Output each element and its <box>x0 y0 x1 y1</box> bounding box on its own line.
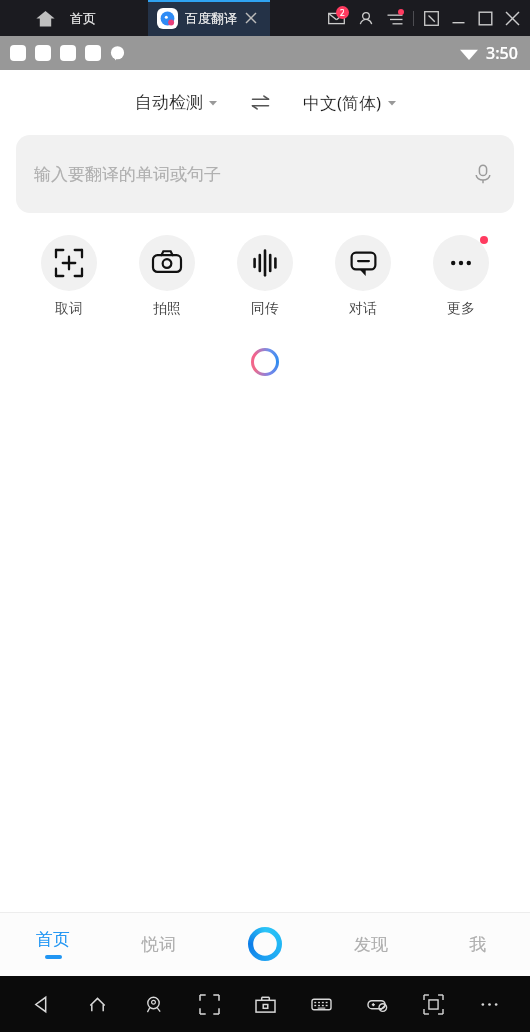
staticText: 百度翻译 <box>185 10 237 26</box>
staticText: 悦词 <box>142 934 176 955</box>
button[interactable]: Close <box>505 11 520 26</box>
staticText: 发现 <box>354 934 388 955</box>
button[interactable]: 百度翻译 <box>148 0 270 36</box>
button[interactable]: Menu <box>387 11 403 27</box>
staticText: 中文(简体) <box>303 91 382 114</box>
button[interactable]: Close tab <box>244 11 258 25</box>
staticText: 输入要翻译的单词或句子 <box>34 164 221 185</box>
button[interactable]: 悦词 <box>106 912 212 976</box>
button[interactable]: Home <box>80 987 114 1021</box>
staticText: 更多 <box>447 300 475 318</box>
button[interactable]: 发现 <box>318 912 424 976</box>
button[interactable]: Boost <box>136 987 170 1021</box>
button[interactable]: Translate <box>212 912 318 976</box>
button[interactable]: Swap languages <box>245 87 275 117</box>
button[interactable]: 对话 <box>314 233 412 320</box>
button[interactable]: 首页 <box>0 912 106 976</box>
button[interactable]: 中文(简体) <box>297 87 402 118</box>
button[interactable]: Account <box>358 11 374 27</box>
button[interactable]: 更多 <box>412 233 510 320</box>
button[interactable]: 自动检测 <box>129 88 223 117</box>
staticText: 同传 <box>251 300 279 318</box>
button[interactable]: More <box>472 987 506 1021</box>
staticText: 对话 <box>349 300 377 318</box>
button[interactable]: Gamepad off <box>360 987 394 1021</box>
button[interactable]: Scan <box>192 987 226 1021</box>
button[interactable]: 拍照 <box>118 233 216 320</box>
button[interactable]: Screenshot <box>416 987 450 1021</box>
button[interactable]: 输入要翻译的单词或句子 <box>16 135 514 213</box>
button[interactable]: Messages <box>328 10 345 27</box>
button[interactable]: Home <box>34 7 57 30</box>
staticText: 首页 <box>36 929 70 950</box>
staticText: 3:50 <box>486 42 518 64</box>
button[interactable]: 同传 <box>216 233 314 320</box>
button[interactable]: Minimize <box>451 11 466 26</box>
staticText: 拍照 <box>153 300 181 318</box>
button[interactable]: Toolbox <box>248 987 282 1021</box>
button[interactable]: Restore <box>424 11 439 26</box>
button[interactable]: 取词 <box>20 233 118 320</box>
staticText: 我 <box>469 934 486 955</box>
staticText: 2 <box>340 7 345 18</box>
button[interactable]: Voice input <box>466 157 500 191</box>
button[interactable]: Back <box>24 987 58 1021</box>
staticText: 自动检测 <box>135 92 203 113</box>
button[interactable]: Keyboard <box>304 987 338 1021</box>
button[interactable]: 我 <box>424 912 530 976</box>
staticText: 取词 <box>55 300 83 318</box>
staticText: 首页 <box>70 10 96 26</box>
button[interactable]: Maximize <box>478 11 493 26</box>
